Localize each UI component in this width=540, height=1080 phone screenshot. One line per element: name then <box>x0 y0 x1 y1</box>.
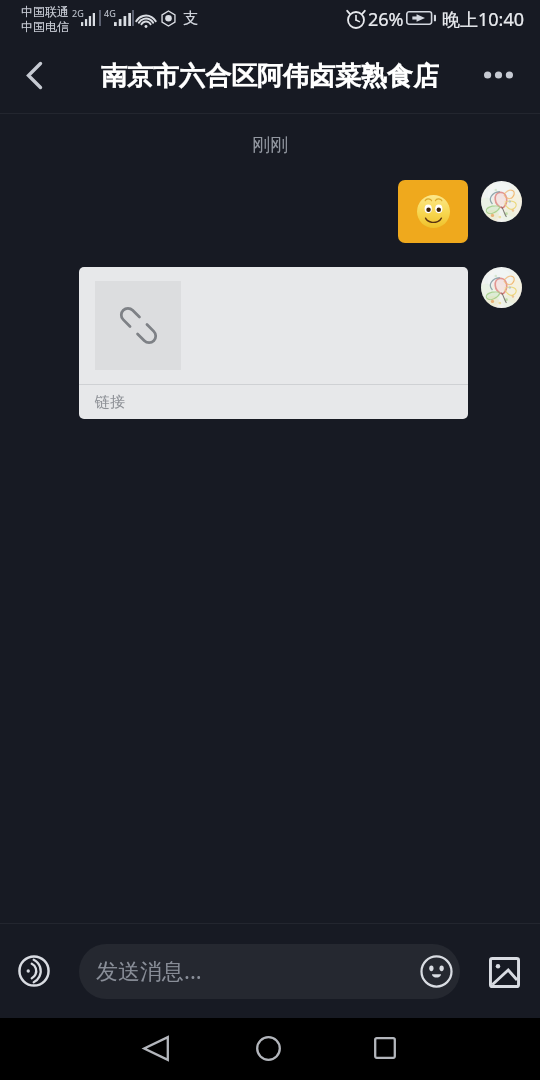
staticText: 链接 <box>95 393 125 412</box>
staticText: 2G <box>72 7 84 19</box>
button[interactable]: Back <box>10 51 58 99</box>
staticText: 刚刚 <box>0 134 540 157</box>
button[interactable]: Profile picture <box>481 267 522 308</box>
button[interactable]: Back <box>132 1024 180 1072</box>
button[interactable]: Voice message <box>12 949 56 993</box>
staticText: 晚上10:40 <box>442 7 525 32</box>
button[interactable] <box>398 180 468 243</box>
button[interactable]: 发送消息... <box>79 944 460 999</box>
button[interactable]: Emoji <box>420 955 453 988</box>
button[interactable]: More options <box>474 51 522 99</box>
staticText: 中国电信 <box>21 19 69 34</box>
staticText: 支 <box>183 9 198 28</box>
button[interactable]: Send image <box>482 950 526 994</box>
button[interactable]: Profile picture <box>481 181 522 222</box>
button[interactable]: Home <box>244 1024 292 1072</box>
button[interactable]: 链接 <box>79 267 468 419</box>
staticText: 4G <box>104 7 116 19</box>
button[interactable]: Recent apps <box>361 1024 409 1072</box>
staticText: 南京市六合区阿伟卤菜熟食店 <box>101 60 439 93</box>
staticText: 26% <box>368 7 404 32</box>
staticText: 中国联通 <box>21 4 69 19</box>
staticText: 发送消息... <box>96 955 202 985</box>
